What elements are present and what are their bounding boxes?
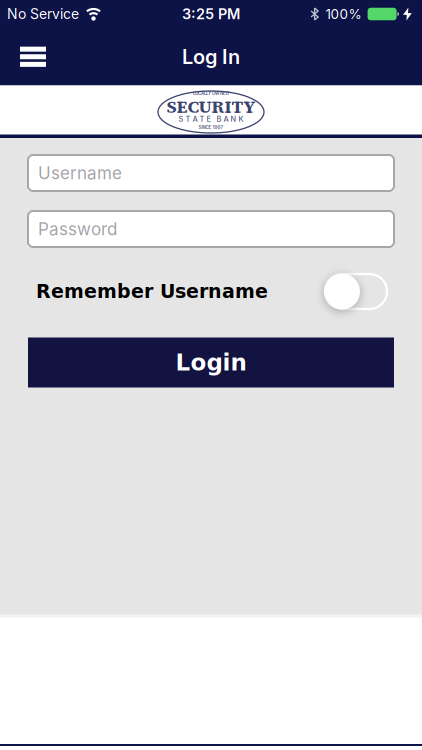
staticText: SINCE 1907 <box>198 125 223 130</box>
staticText: LOCALLY OWNED <box>193 91 229 96</box>
staticText: Password <box>38 219 117 239</box>
button[interactable]: Password <box>0 211 422 247</box>
staticText: 100% <box>326 6 362 22</box>
staticText: No Service <box>7 5 79 22</box>
button[interactable] <box>0 47 46 67</box>
button[interactable]: Login <box>0 337 422 387</box>
staticText: S T A T E B A N K <box>178 114 243 123</box>
staticText: Remember Username <box>36 280 268 302</box>
staticText: Login <box>175 349 246 376</box>
staticText: Username <box>38 163 122 183</box>
button[interactable] <box>324 273 388 309</box>
staticText: SECURITY <box>166 94 255 118</box>
staticText: 3:25 PM <box>182 5 240 23</box>
staticText: Log In <box>182 45 240 69</box>
button[interactable]: Username <box>0 155 422 191</box>
